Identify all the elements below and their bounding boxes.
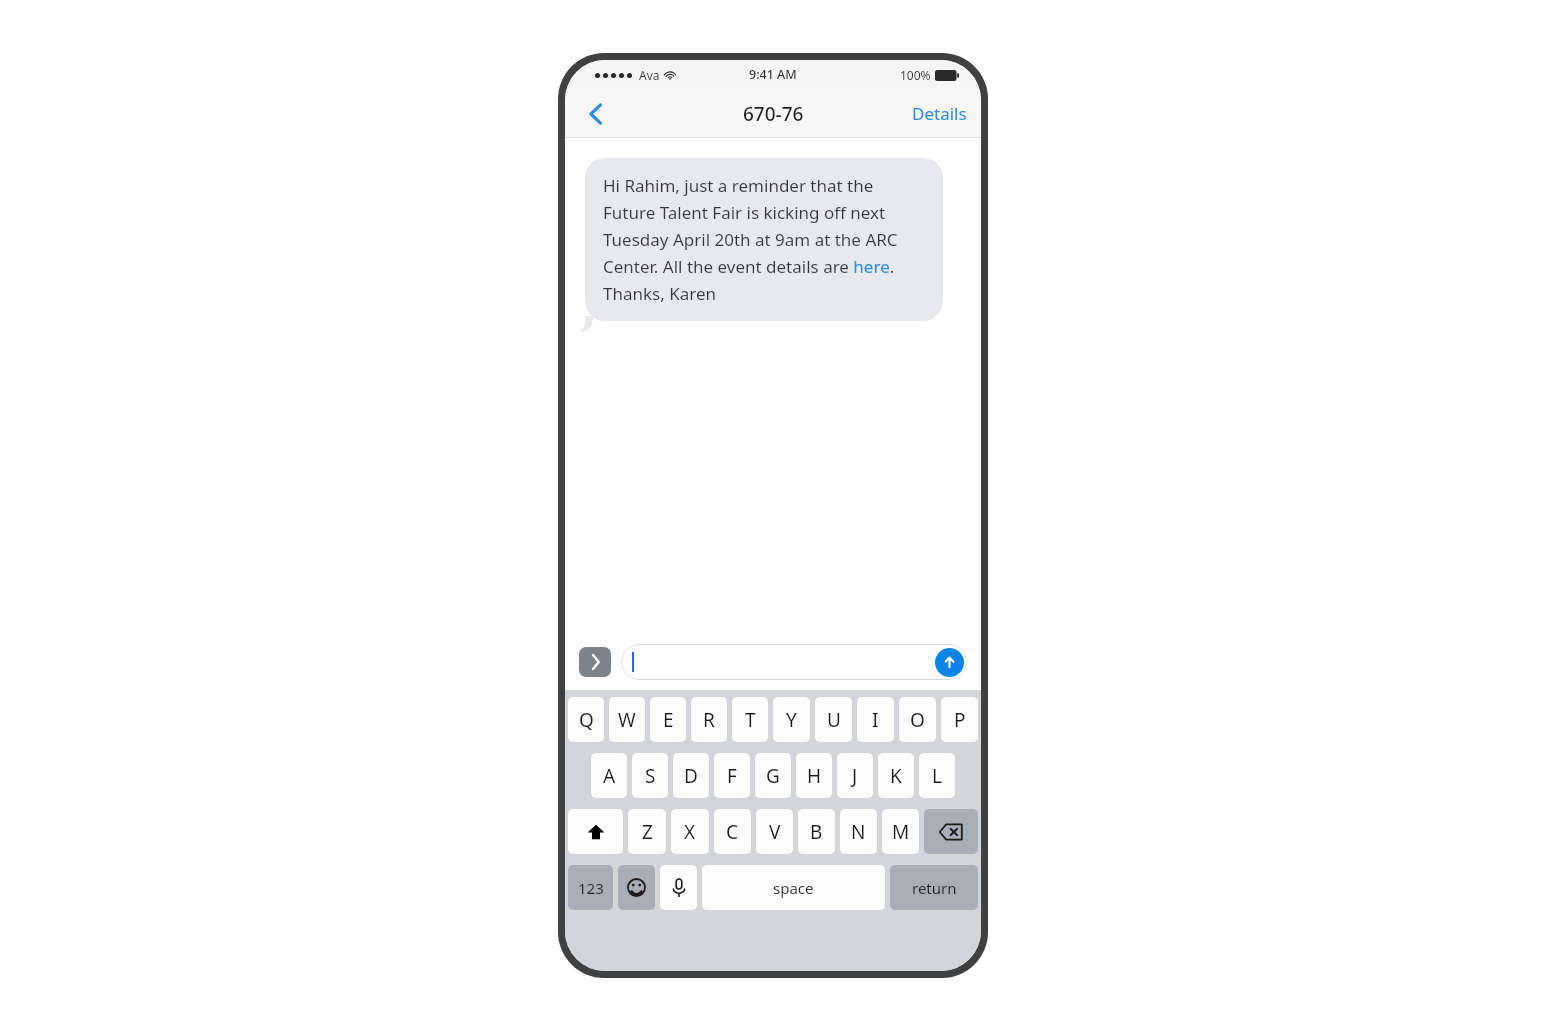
staticText: return xyxy=(912,878,957,898)
staticText: E xyxy=(663,707,674,733)
staticText: L xyxy=(932,763,942,789)
staticText: D xyxy=(684,763,698,789)
staticText: I xyxy=(872,707,879,733)
button[interactable]: H xyxy=(796,753,832,798)
button[interactable]: U xyxy=(815,697,852,742)
button[interactable]: Z xyxy=(628,809,666,854)
button[interactable]: Emoji xyxy=(618,865,655,910)
button[interactable]: X xyxy=(671,809,709,854)
button[interactable]: E xyxy=(650,697,686,742)
button[interactable]: 123 xyxy=(568,865,613,910)
button[interactable]: Hi Rahim, just a reminder that the Futur… xyxy=(585,158,943,321)
button[interactable]: P xyxy=(941,697,978,742)
staticText: M xyxy=(892,819,910,845)
button[interactable]: Details xyxy=(906,94,973,133)
button[interactable]: Q xyxy=(568,697,604,742)
staticText: X xyxy=(684,819,696,845)
button[interactable]: A xyxy=(591,753,627,798)
staticText: W xyxy=(618,707,636,733)
button[interactable]: R xyxy=(691,697,727,742)
button[interactable]: Send xyxy=(621,644,967,680)
button[interactable]: D xyxy=(673,753,709,798)
button[interactable]: I xyxy=(857,697,894,742)
staticText: V xyxy=(769,819,781,845)
staticText: Details xyxy=(912,102,967,125)
button[interactable]: Y xyxy=(773,697,810,742)
staticText: 9:41 AM xyxy=(749,66,797,83)
staticText: S xyxy=(645,763,656,789)
staticText: J xyxy=(852,763,858,789)
staticText: N xyxy=(851,819,866,845)
button[interactable]: T xyxy=(732,697,768,742)
staticText: Hi Rahim, just a reminder that the Futur… xyxy=(603,174,925,305)
staticText: Q xyxy=(579,707,594,733)
button[interactable]: Back xyxy=(575,92,617,136)
button[interactable]: space xyxy=(702,865,885,910)
staticText: F xyxy=(727,763,737,789)
staticText: 670-76 xyxy=(743,101,804,127)
button[interactable]: M xyxy=(882,809,919,854)
button[interactable]: return xyxy=(890,865,978,910)
staticText: space xyxy=(773,878,814,898)
button[interactable]: V xyxy=(756,809,793,854)
button[interactable]: Delete xyxy=(924,809,978,854)
staticText: B xyxy=(810,819,823,845)
staticText: H xyxy=(807,763,822,789)
staticText: G xyxy=(766,763,780,789)
button[interactable]: K xyxy=(878,753,914,798)
staticText: T xyxy=(745,707,756,733)
staticText: A xyxy=(603,763,616,789)
button[interactable]: G xyxy=(755,753,791,798)
staticText: 100% xyxy=(900,67,931,83)
button[interactable]: Send xyxy=(935,648,964,677)
staticText: 123 xyxy=(578,878,604,898)
staticText: Ava xyxy=(639,67,660,83)
button[interactable]: More options xyxy=(579,647,611,677)
staticText: Y xyxy=(786,707,797,733)
button[interactable]: S xyxy=(632,753,668,798)
button[interactable]: W xyxy=(609,697,645,742)
button[interactable]: C xyxy=(714,809,751,854)
button[interactable]: Dictate xyxy=(660,865,697,910)
staticText: K xyxy=(890,763,902,789)
button[interactable]: F xyxy=(714,753,750,798)
button[interactable]: L xyxy=(919,753,955,798)
button[interactable]: N xyxy=(840,809,877,854)
staticText: P xyxy=(954,707,966,733)
staticText: U xyxy=(827,707,841,733)
button[interactable]: B xyxy=(798,809,835,854)
staticText: O xyxy=(910,707,925,733)
button[interactable]: Shift xyxy=(568,809,623,854)
staticText: Z xyxy=(642,819,653,845)
staticText: R xyxy=(703,707,715,733)
button[interactable]: O xyxy=(899,697,936,742)
staticText: C xyxy=(726,819,739,845)
button[interactable]: J xyxy=(837,753,873,798)
